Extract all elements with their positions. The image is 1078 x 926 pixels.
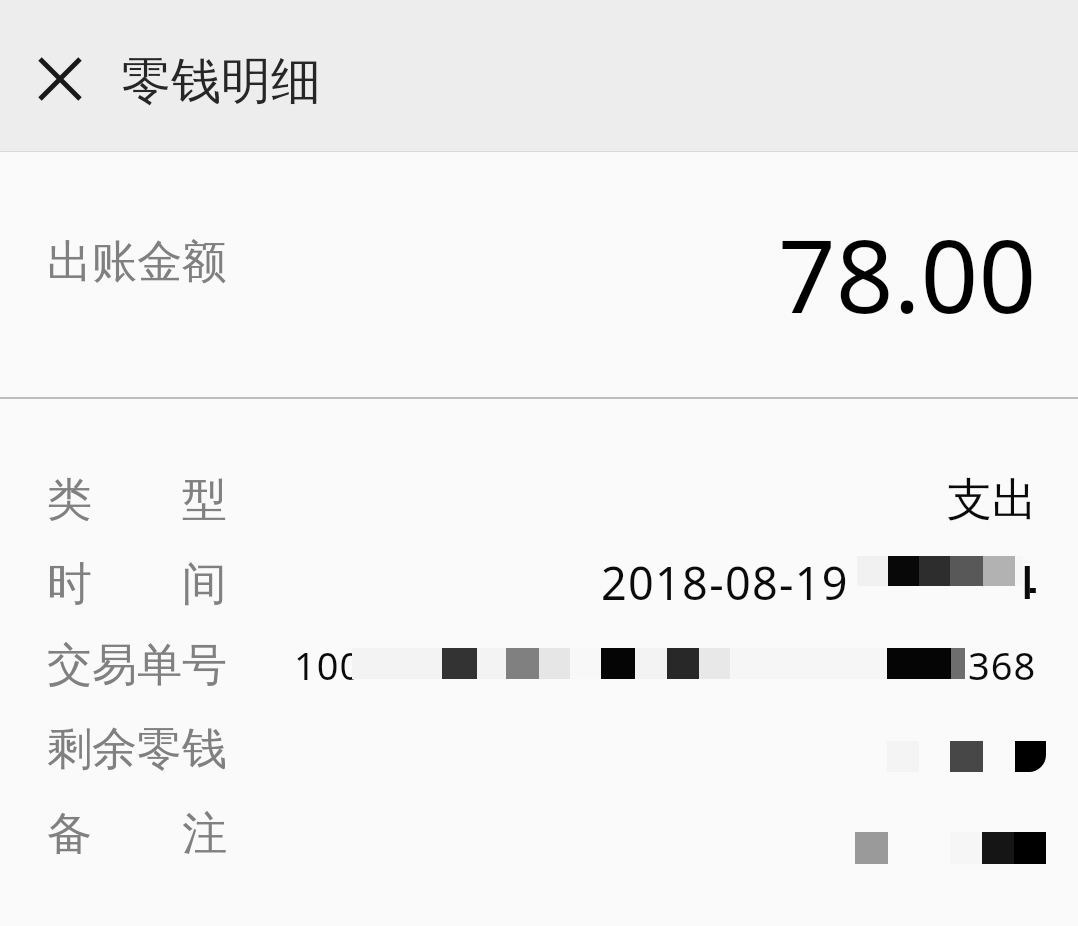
button[interactable]: 备 注 <box>0 790 1078 873</box>
staticText: 时 间 <box>47 551 227 612</box>
staticText: 支出 <box>947 472 1037 529</box>
staticText: 出账金额 <box>47 234 227 291</box>
staticText: 100 <box>294 639 363 691</box>
button[interactable]: 剩余零钱 <box>0 708 1078 791</box>
staticText: 78.00 <box>778 205 1037 343</box>
button[interactable]: 关闭 <box>32 51 88 107</box>
staticText: 368 <box>968 639 1037 691</box>
staticText: 剩余零钱 <box>47 721 227 778</box>
button[interactable]: 交易单号 <box>0 624 1078 707</box>
staticText: 类 型 <box>47 467 227 528</box>
button[interactable]: 类 型 <box>0 456 1078 539</box>
staticText: 备 注 <box>47 801 227 862</box>
staticText: 零钱明细 <box>121 50 321 113</box>
button[interactable]: 出账金额 <box>0 152 1078 397</box>
button[interactable]: 时 间 <box>0 540 1078 623</box>
staticText: 2018-08-19 <box>601 552 849 613</box>
staticText: 交易单号 <box>47 637 227 694</box>
